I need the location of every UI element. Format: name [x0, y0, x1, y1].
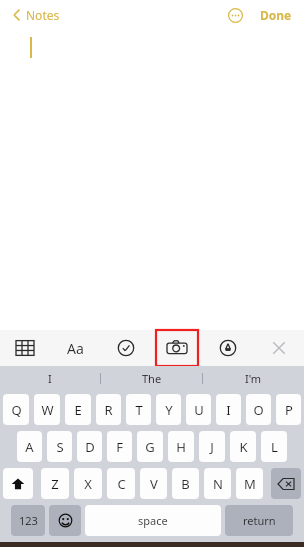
button[interactable]: D: [77, 431, 102, 462]
staticText: F: [116, 438, 123, 456]
staticText: J: [210, 438, 214, 456]
staticText: W: [41, 401, 54, 419]
button[interactable]: P: [276, 394, 301, 425]
staticText: 123: [19, 513, 38, 528]
button[interactable]: M: [236, 468, 263, 499]
button[interactable]: Markup: [208, 330, 248, 366]
button[interactable]: The: [101, 366, 202, 390]
staticText: R: [104, 401, 113, 419]
staticText: return: [243, 513, 276, 528]
staticText: L: [271, 438, 278, 456]
staticText: Q: [11, 401, 22, 419]
staticText: I: [226, 401, 231, 419]
button[interactable]: Checklist: [106, 330, 146, 366]
button[interactable]: G: [137, 431, 163, 462]
button[interactable]: L: [261, 431, 287, 462]
staticText: T: [135, 401, 143, 419]
staticText: O: [253, 401, 264, 419]
button[interactable]: J: [199, 431, 225, 462]
button[interactable]: Text format: [55, 330, 95, 366]
button[interactable]: More options: [224, 4, 246, 26]
button[interactable]: Close: [259, 330, 299, 366]
button[interactable]: Emoji: [49, 505, 81, 536]
button[interactable]: return: [225, 505, 293, 536]
button[interactable]: E: [65, 394, 91, 425]
staticText: B: [181, 475, 190, 493]
staticText: N: [213, 475, 223, 493]
button[interactable]: Shift: [3, 468, 33, 499]
button[interactable]: X: [74, 468, 102, 499]
staticText: I: [48, 371, 52, 386]
button[interactable]: space: [85, 505, 221, 536]
button[interactable]: 123: [11, 505, 45, 536]
staticText: Z: [51, 475, 59, 493]
button[interactable]: I'm: [203, 366, 304, 390]
staticText: Notes: [26, 7, 60, 23]
staticText: P: [285, 401, 293, 419]
button[interactable]: B: [172, 468, 199, 499]
staticText: M: [244, 475, 256, 493]
staticText: G: [145, 438, 155, 456]
button[interactable]: T: [126, 394, 151, 425]
staticText: E: [74, 401, 82, 419]
staticText: D: [85, 438, 95, 456]
button[interactable]: O: [246, 394, 271, 425]
button[interactable]: F: [107, 431, 132, 462]
button[interactable]: Camera: [156, 330, 198, 366]
button[interactable]: K: [230, 431, 256, 462]
button[interactable]: A: [17, 431, 42, 462]
button[interactable]: C: [107, 468, 135, 499]
button[interactable]: Table: [5, 330, 45, 366]
button[interactable]: H: [168, 431, 194, 462]
staticText: A: [25, 438, 34, 456]
staticText: C: [117, 475, 126, 493]
staticText: Aa: [67, 339, 84, 358]
staticText: X: [84, 475, 92, 493]
staticText: V: [150, 475, 158, 493]
staticText: H: [176, 438, 186, 456]
button[interactable]: S: [47, 431, 72, 462]
button[interactable]: U: [186, 394, 211, 425]
button[interactable]: Q: [3, 394, 29, 425]
button[interactable]: R: [96, 394, 121, 425]
button[interactable]: Notes: [12, 7, 60, 23]
staticText: K: [239, 438, 248, 456]
button[interactable]: Z: [41, 468, 69, 499]
staticText: S: [56, 438, 64, 456]
button[interactable]: Done: [260, 7, 292, 23]
staticText: Done: [260, 7, 292, 23]
staticText: I'm: [245, 371, 262, 386]
button[interactable]: V: [140, 468, 167, 499]
button[interactable]: Y: [156, 394, 181, 425]
staticText: space: [138, 513, 168, 528]
staticText: U: [194, 401, 204, 419]
staticText: The: [142, 371, 162, 386]
staticText: Y: [165, 401, 173, 419]
button[interactable]: W: [34, 394, 60, 425]
button[interactable]: I: [0, 366, 100, 390]
button[interactable]: I: [216, 394, 241, 425]
button[interactable]: N: [204, 468, 231, 499]
button[interactable]: Backspace: [271, 468, 301, 499]
